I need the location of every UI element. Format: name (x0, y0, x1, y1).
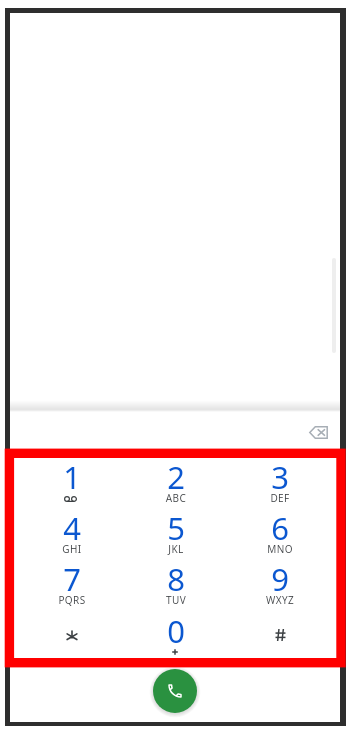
staticText: 5 (126, 507, 226, 549)
button[interactable]: 7 (22, 558, 122, 609)
staticText: TUV (126, 593, 226, 607)
staticText: 6 (230, 507, 330, 549)
staticText: 8 (126, 558, 226, 600)
button[interactable]: Pound (230, 610, 330, 661)
staticText: 0 (126, 610, 226, 652)
staticText: 4 (22, 507, 122, 549)
staticText: MNO (230, 542, 330, 556)
staticText: DEF (230, 491, 330, 505)
button[interactable]: Backspace (298, 412, 338, 452)
button[interactable]: 0 (126, 610, 226, 661)
staticText: 2 (126, 456, 226, 498)
staticText: GHI (22, 542, 122, 556)
staticText: 1 (22, 456, 122, 498)
button[interactable]: 5 (126, 507, 226, 558)
button[interactable]: Call (153, 669, 197, 713)
staticText: PQRS (22, 593, 122, 607)
button[interactable]: 1 (22, 456, 122, 507)
button[interactable]: 3 (230, 456, 330, 507)
button[interactable]: Star (22, 610, 122, 661)
button[interactable]: 4 (22, 507, 122, 558)
button[interactable]: 8 (126, 558, 226, 609)
button[interactable]: 9 (230, 558, 330, 609)
staticText: JKL (126, 542, 226, 556)
staticText: ABC (126, 491, 226, 505)
staticText: 9 (230, 558, 330, 600)
button[interactable]: 2 (126, 456, 226, 507)
staticText: 7 (22, 558, 122, 600)
button[interactable]: 6 (230, 507, 330, 558)
staticText: 3 (230, 456, 330, 498)
staticText: WXYZ (230, 593, 330, 607)
